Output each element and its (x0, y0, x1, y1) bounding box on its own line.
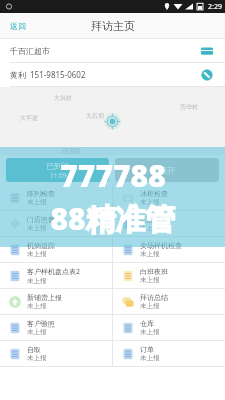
button[interactable]: 门店照数 (0, 211, 112, 236)
staticText: 机病追踪 (27, 241, 55, 250)
staticText: 拜访主页 (91, 19, 135, 33)
staticText: 未上报 (140, 250, 160, 258)
staticText: 未上报 (140, 224, 160, 232)
staticText: 未上报 (27, 277, 47, 285)
staticText: 未上报 (27, 302, 47, 310)
staticText: 未上报 (140, 302, 160, 310)
staticText: 返回 (10, 21, 26, 31)
staticText: 卖场样机检查 (140, 241, 182, 250)
staticText: 自取 (27, 345, 41, 354)
staticText: 151-9815-0602 (30, 69, 86, 80)
button[interactable]: 自取 (0, 341, 112, 366)
staticText: 未上报 (27, 198, 47, 206)
staticText: 客户样机盘点表2 (27, 267, 81, 277)
staticText: 未上报 (140, 354, 160, 362)
staticText: 777788 (60, 155, 166, 196)
staticText: 仓库 (140, 319, 154, 328)
button[interactable]: 陈列检查 (0, 185, 112, 210)
button[interactable]: 竞品信息 (113, 211, 225, 236)
staticText: 88精准管 (50, 198, 176, 239)
button[interactable]: 拨打电话 (199, 67, 215, 83)
staticText: 未上报 (27, 224, 47, 232)
staticText: 大石坝 (86, 112, 104, 120)
staticText: 陈列检查 (27, 189, 55, 198)
staticText: 未上报 (27, 250, 47, 258)
staticText: 未上报 (27, 354, 47, 362)
button[interactable]: 离开 (115, 158, 219, 182)
staticText: 客户验照 (27, 319, 55, 328)
staticText: 拜访总结 (140, 293, 168, 302)
staticText: 冰柜检查 (140, 189, 168, 198)
button[interactable]: 冰柜检查 (113, 185, 225, 210)
button[interactable]: 订单 (113, 341, 225, 366)
staticText: 已到达 (46, 161, 70, 171)
button[interactable]: 千百汇超市 (0, 39, 225, 62)
staticText: 新铺货上报 (27, 293, 62, 302)
button[interactable]: 黄利 (0, 63, 225, 86)
button[interactable]: 仓库 (113, 315, 225, 340)
staticText: 订单 (140, 345, 154, 354)
staticText: 芳华村 (180, 103, 198, 111)
staticText: 未上报 (140, 198, 160, 206)
button[interactable]: 卖场样机检查 (113, 237, 225, 262)
button[interactable]: 机病追踪 (0, 237, 112, 262)
staticText: 未上报 (140, 328, 160, 336)
staticText: 黄利 (10, 70, 26, 80)
staticText: 离开 (159, 165, 175, 175)
button[interactable]: 门店 (199, 43, 215, 59)
button[interactable]: 已到达 (6, 158, 109, 182)
button[interactable]: 返回 (6, 18, 30, 34)
button[interactable]: 新铺货上报 (0, 289, 112, 314)
staticText: 竞品信息 (140, 215, 168, 224)
button[interactable]: 拜访总结 (113, 289, 225, 314)
staticText: 大兴村 (54, 94, 72, 102)
button[interactable]: 白班夜班 (113, 263, 225, 288)
staticText: 未上报 (27, 328, 47, 336)
staticText: 2:29 (208, 2, 222, 12)
staticText: 千百汇超市 (10, 46, 50, 56)
staticText: 11:09 (50, 171, 67, 180)
staticText: 未上报 (140, 276, 160, 284)
staticText: 门店照数 (27, 215, 55, 224)
button[interactable]: 客户样机盘点表2 (0, 263, 112, 288)
staticText: 大平道 (20, 114, 38, 122)
button[interactable]: 客户验照 (0, 315, 112, 340)
staticText: 西里村 (63, 147, 81, 155)
staticText: 白班夜班 (140, 267, 168, 276)
